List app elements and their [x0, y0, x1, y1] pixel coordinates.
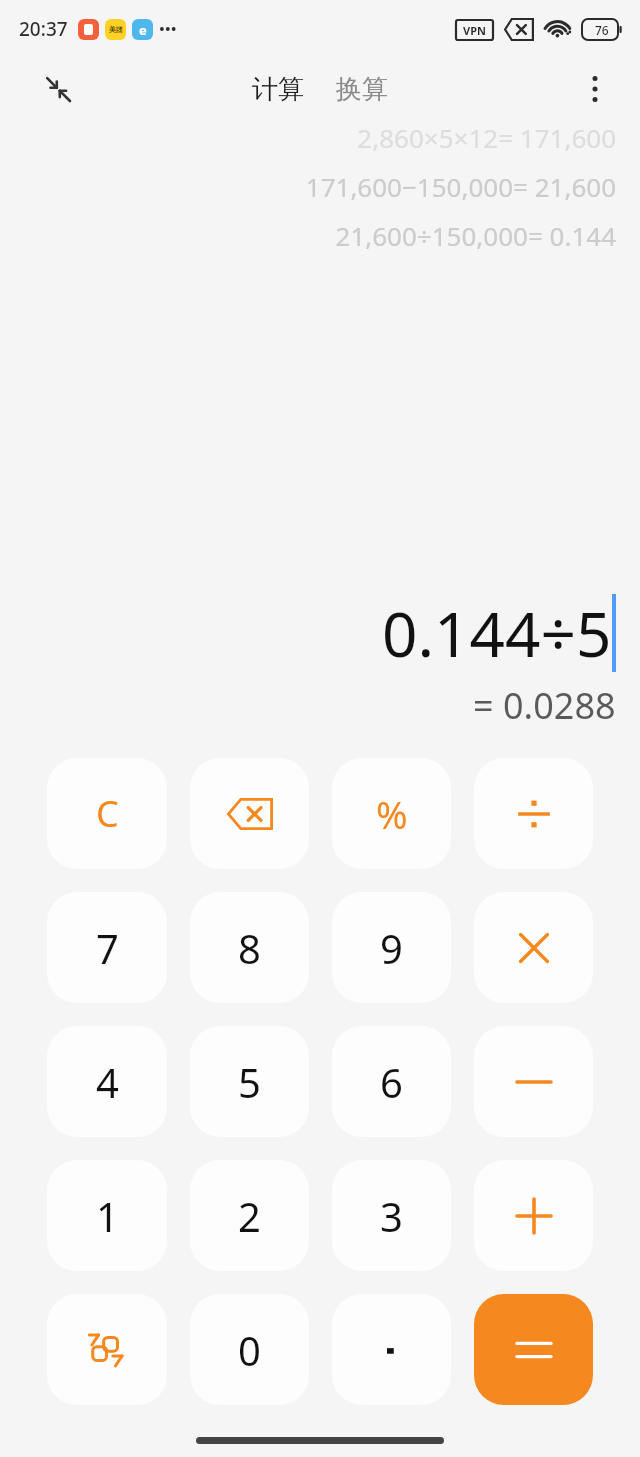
staticText: VPN — [463, 23, 486, 38]
staticText: 0.144÷5 — [382, 591, 612, 675]
button[interactable]: 0 — [190, 1294, 309, 1405]
button[interactable]: 5 — [190, 1026, 309, 1137]
button[interactable]: 8 — [190, 892, 309, 1003]
staticText: C — [96, 789, 119, 838]
staticText: 6 — [380, 1055, 403, 1109]
button[interactable]: Plus — [474, 1160, 593, 1271]
staticText: 0 — [238, 1323, 261, 1377]
button[interactable]: 换算 — [330, 67, 394, 112]
staticText: e — [139, 21, 147, 39]
button[interactable]: 3 — [332, 1160, 451, 1271]
button[interactable]: Divide — [474, 758, 593, 869]
button[interactable]: Multiply — [474, 892, 593, 1003]
staticText: 计算 — [252, 73, 304, 106]
button[interactable]: Percent — [332, 758, 451, 869]
button[interactable]: 6 — [332, 1026, 451, 1137]
staticText: % — [376, 788, 408, 840]
staticText: 1 — [96, 1189, 119, 1243]
staticText: = 0.0288 — [473, 681, 616, 730]
button[interactable]: 9 — [332, 892, 451, 1003]
staticText: 3 — [380, 1189, 403, 1243]
staticText: 171,600−150,000= 21,600 — [305, 169, 616, 204]
staticText: 5 — [238, 1055, 261, 1109]
button[interactable]: Scientific mode — [47, 1294, 167, 1405]
staticText: 美团 — [109, 25, 123, 34]
staticText: 2 — [238, 1189, 261, 1243]
staticText: 换算 — [336, 73, 388, 106]
staticText: 21,600÷150,000= 0.144 — [335, 218, 616, 253]
button[interactable]: Minus — [474, 1026, 593, 1137]
button[interactable]: Collapse — [34, 65, 82, 113]
staticText: 9 — [380, 921, 403, 975]
staticText: 20:37 — [19, 16, 68, 42]
button[interactable]: Equals — [474, 1294, 593, 1405]
button[interactable]: 计算 — [246, 67, 310, 112]
button[interactable]: Backspace — [190, 758, 309, 869]
button[interactable]: Decimal point — [332, 1294, 451, 1405]
staticText: 8 — [238, 921, 261, 975]
button[interactable]: 1 — [47, 1160, 167, 1271]
staticText: 76 — [595, 22, 609, 38]
button[interactable]: 2 — [190, 1160, 309, 1271]
staticText: 4 — [96, 1055, 119, 1109]
staticText: 7 — [96, 921, 119, 975]
button[interactable]: 4 — [47, 1026, 167, 1137]
button[interactable]: C — [47, 758, 167, 869]
staticText: 2,860×5×12= 171,600 — [357, 120, 616, 155]
button[interactable]: 7 — [47, 892, 167, 1003]
button[interactable]: More options — [572, 66, 618, 112]
